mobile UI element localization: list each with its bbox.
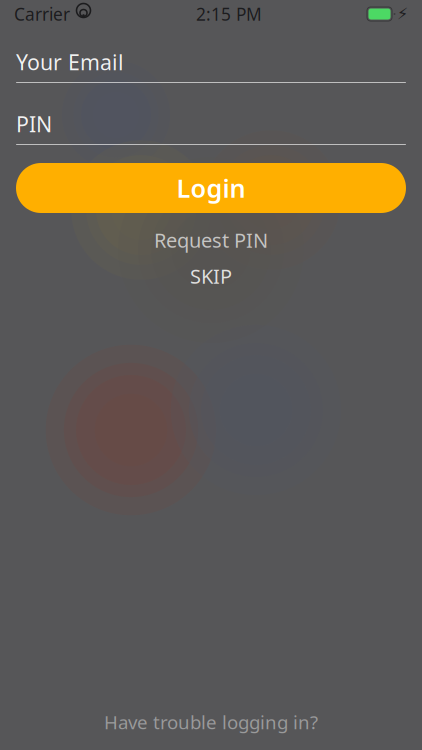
button[interactable]: Login xyxy=(16,163,406,213)
button[interactable]: Request PIN xyxy=(0,227,422,253)
button[interactable]: Have trouble logging in? xyxy=(0,708,422,736)
staticText: ⚡︎ xyxy=(397,5,408,23)
staticText: 2:15 PM xyxy=(196,2,262,25)
button[interactable]: SKIP xyxy=(0,263,422,289)
staticText: PIN xyxy=(16,110,52,138)
staticText: Have trouble logging in? xyxy=(104,710,318,734)
staticText: SKIP xyxy=(190,263,232,289)
staticText: Request PIN xyxy=(154,227,268,253)
staticText: Carrier xyxy=(14,2,70,25)
staticText: Your Email xyxy=(16,48,124,76)
staticText: Login xyxy=(176,171,245,205)
